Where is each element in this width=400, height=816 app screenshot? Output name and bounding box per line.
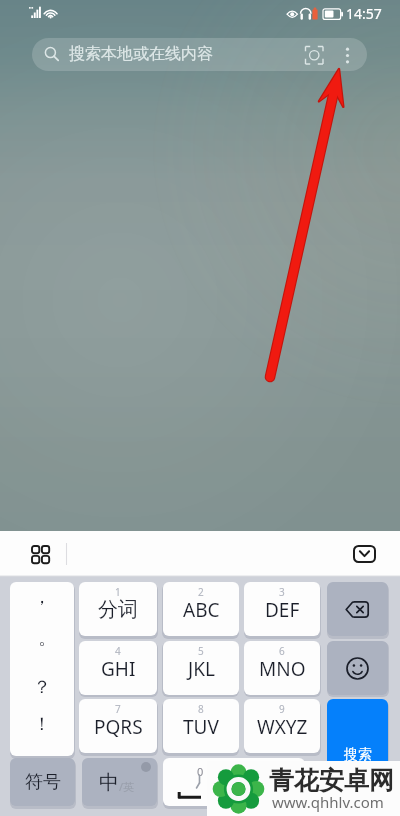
button[interactable]	[327, 582, 388, 636]
button[interactable]: 3	[244, 582, 320, 636]
staticText: 搜索	[344, 746, 372, 764]
staticText: GHI	[101, 656, 136, 682]
staticText: 0	[197, 764, 204, 779]
button[interactable]: Scan with lens	[300, 41, 328, 69]
button[interactable]: 中	[82, 758, 157, 806]
staticText: 5	[198, 644, 204, 658]
staticText: WXYZ	[257, 714, 308, 740]
staticText: 分词	[98, 597, 138, 622]
staticText: 1	[115, 585, 121, 599]
staticText: 中	[99, 770, 119, 795]
button[interactable]: 1	[79, 582, 157, 636]
staticText: www.qhhlv.com	[272, 792, 384, 812]
staticText: ？	[33, 676, 51, 699]
staticText: TUV	[183, 714, 219, 740]
staticText: DEF	[265, 597, 300, 623]
staticText: MNO	[259, 656, 306, 682]
button[interactable]: ，	[10, 582, 74, 756]
button[interactable]: 5	[163, 641, 239, 695]
button[interactable]: 4	[79, 641, 157, 695]
staticText: 14:57	[346, 4, 382, 23]
staticText: ABC	[183, 597, 220, 623]
staticText: 4	[115, 644, 121, 658]
button[interactable]: 9	[244, 699, 320, 753]
staticText: 8	[198, 702, 204, 716]
button[interactable]: 7	[79, 699, 157, 753]
button[interactable]: 2	[163, 582, 239, 636]
staticText: 搜索本地或在线内容	[69, 44, 213, 64]
staticText: 3	[279, 585, 285, 599]
staticText: 符号	[25, 771, 61, 794]
staticText: 7	[115, 702, 121, 716]
button[interactable]	[327, 641, 388, 695]
staticText: 6	[279, 644, 285, 658]
staticText: 。	[38, 627, 56, 650]
staticText: JKL	[188, 656, 215, 682]
staticText: 青花安卓网	[269, 765, 394, 796]
button[interactable]: 0	[163, 758, 305, 806]
staticText: 2	[198, 585, 204, 599]
button[interactable]: 6	[244, 641, 320, 695]
button[interactable]: 8	[163, 699, 239, 753]
staticText: ！	[33, 713, 51, 736]
button[interactable]: Keyboard panel menu	[26, 540, 55, 569]
staticText: ，	[33, 586, 51, 609]
button[interactable]: Hide keyboard	[350, 542, 379, 566]
staticText: 9	[279, 702, 285, 716]
staticText: /英	[119, 779, 135, 794]
button[interactable]: More options	[333, 41, 361, 69]
staticText: PQRS	[94, 714, 143, 740]
button[interactable]: 搜索本地或在线内容	[32, 38, 367, 71]
button[interactable]: 搜索	[327, 699, 388, 807]
button[interactable]: 符号	[10, 758, 75, 806]
